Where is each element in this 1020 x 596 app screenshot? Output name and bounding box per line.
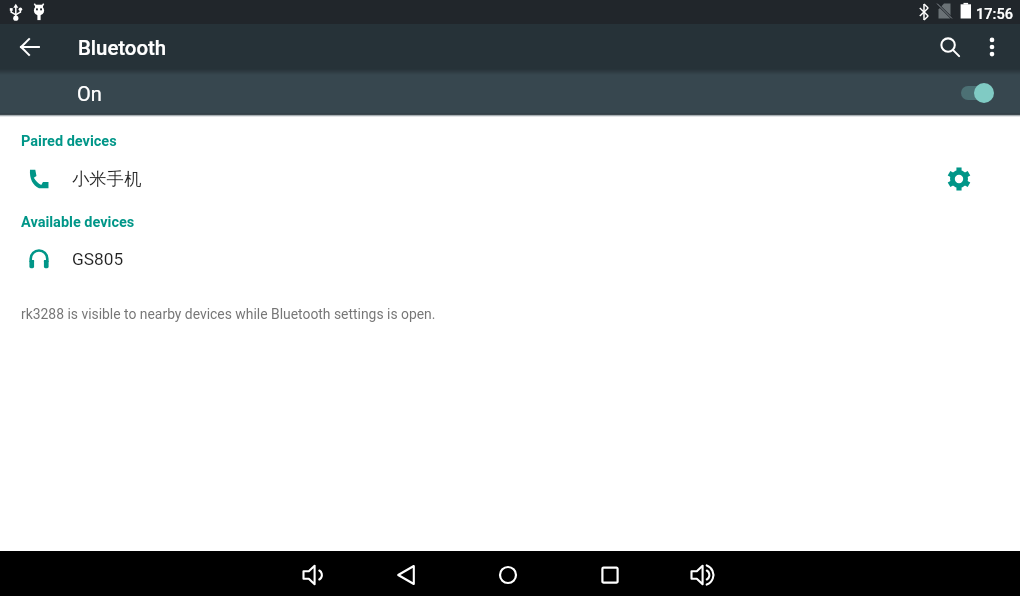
button[interactable]: Recent apps <box>587 551 633 596</box>
button[interactable]: Back <box>384 551 430 596</box>
button[interactable]: 小米手机 <box>0 156 1020 202</box>
button[interactable]: On <box>0 70 1020 115</box>
button[interactable]: More options <box>970 25 1014 69</box>
button[interactable]: Home <box>485 551 531 596</box>
staticText: On <box>77 82 102 105</box>
staticText: Paired devices <box>21 133 117 150</box>
staticText: Bluetooth <box>78 36 167 60</box>
button[interactable]: GS805 <box>0 236 1020 282</box>
button[interactable]: Volume down <box>290 551 336 596</box>
staticText: Available devices <box>21 214 135 231</box>
button[interactable]: Device settings <box>941 161 977 197</box>
staticText: rk3288 is visible to nearby devices whil… <box>21 306 436 322</box>
staticText: 小米手机 <box>72 168 142 190</box>
staticText: GS805 <box>72 249 124 269</box>
button[interactable]: Back <box>10 27 50 67</box>
staticText: 17:56 <box>976 5 1014 22</box>
button[interactable]: Search <box>926 25 970 69</box>
button[interactable]: Volume up <box>678 551 724 596</box>
